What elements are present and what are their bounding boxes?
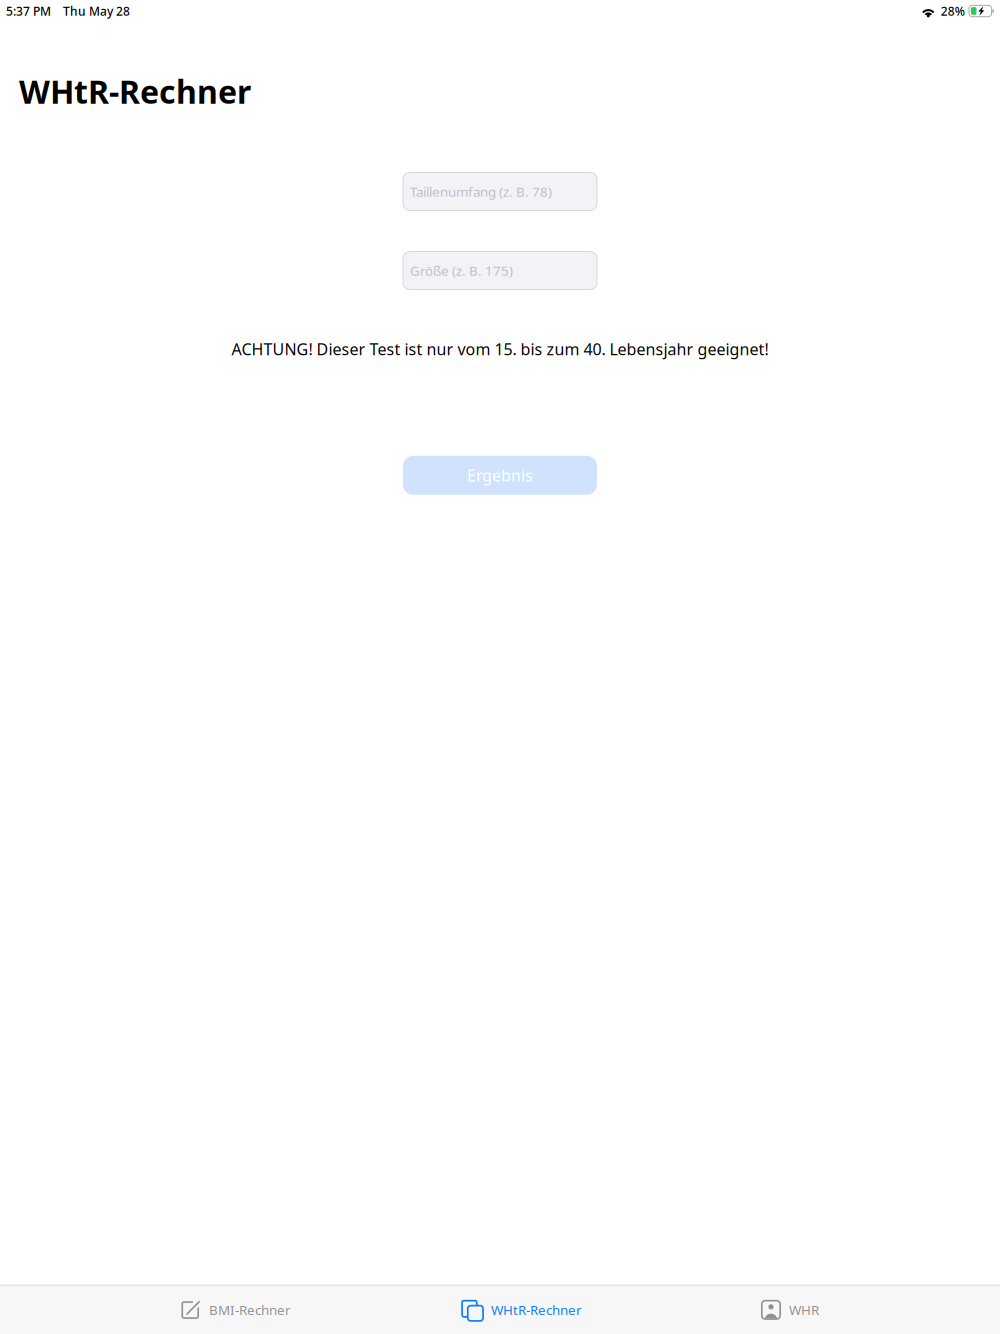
- staticText: Größe (z. B. 175): [410, 262, 513, 279]
- staticText: Thu May 28: [63, 3, 130, 19]
- staticText: Ergebnis: [467, 465, 533, 486]
- staticText: Taillenumfang (z. B. 78): [410, 183, 552, 200]
- staticText: 28%: [941, 3, 965, 19]
- staticText: WHtR-Rechner: [491, 1301, 582, 1319]
- button[interactable]: Taillenumfang (z. B. 78): [403, 172, 597, 210]
- staticText: 5:37 PM: [6, 3, 51, 19]
- button[interactable]: BMI-Rechner: [181, 1286, 291, 1334]
- staticText: ACHTUNG! Dieser Test ist nur vom 15. bis…: [231, 338, 768, 360]
- button[interactable]: WHtR-Rechner: [461, 1286, 582, 1334]
- button[interactable]: Größe (z. B. 175): [403, 251, 597, 289]
- button[interactable]: Ergebnis: [403, 456, 597, 495]
- button[interactable]: WHR: [761, 1286, 819, 1334]
- staticText: BMI-Rechner: [209, 1301, 291, 1319]
- staticText: WHR: [789, 1301, 819, 1319]
- staticText: WHtR-Rechner: [19, 70, 251, 112]
